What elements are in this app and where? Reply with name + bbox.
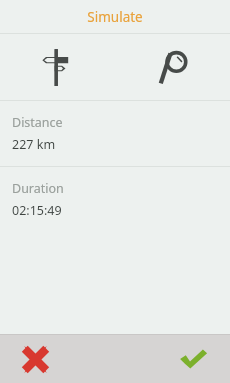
staticText: Duration bbox=[12, 180, 64, 197]
staticText: Simulate bbox=[87, 8, 143, 26]
button[interactable]: Duration bbox=[0, 167, 230, 232]
button[interactable]: Cancel bbox=[0, 335, 115, 383]
button[interactable]: Confirm bbox=[115, 335, 230, 383]
button[interactable]: Distance bbox=[0, 101, 230, 166]
button[interactable]: Directions bbox=[0, 34, 115, 100]
button[interactable]: Search bbox=[115, 34, 230, 100]
staticText: 227 km bbox=[12, 136, 56, 153]
staticText: Distance bbox=[12, 114, 63, 131]
staticText: 02:15:49 bbox=[12, 202, 62, 219]
